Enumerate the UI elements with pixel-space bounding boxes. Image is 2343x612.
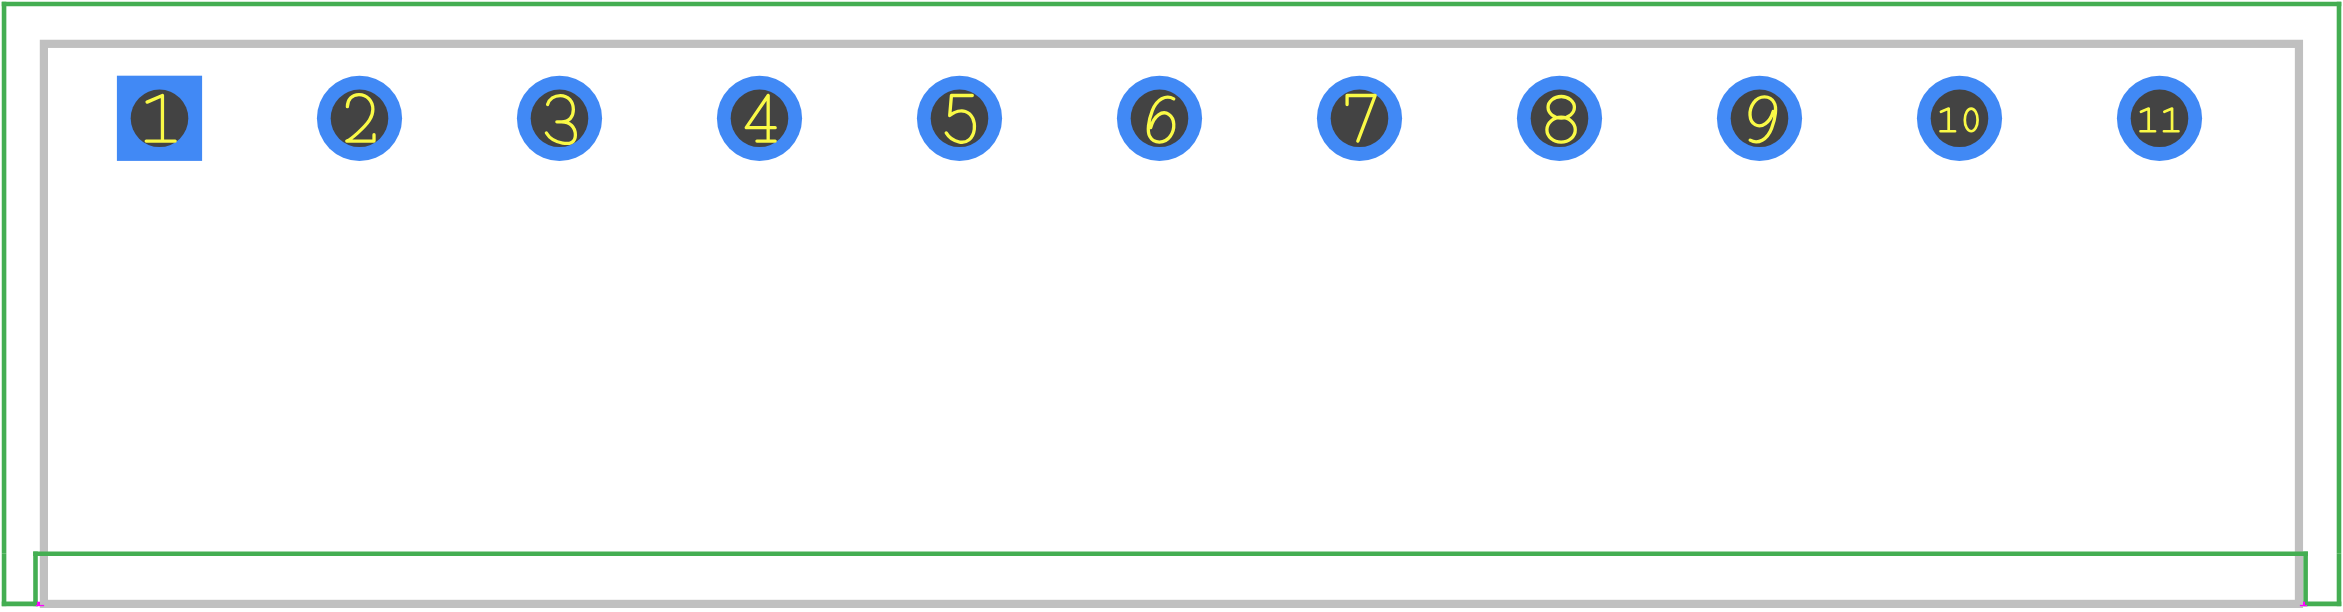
button[interactable]: Pad 7 (1316, 75, 1401, 160)
button[interactable]: Pad 6 (1116, 75, 1201, 160)
button[interactable]: Pad 3 (516, 75, 601, 160)
button[interactable]: Pad 11 (2116, 75, 2201, 160)
button[interactable]: Pad 2 (316, 75, 401, 160)
button[interactable]: Pad 8 (1516, 75, 1601, 160)
button[interactable]: Pad 9 (1716, 75, 1801, 160)
button[interactable]: Pad 5 (916, 75, 1001, 160)
other: PCB footprint drawing: 11 pin through-ho… (0, 0, 2343, 612)
button[interactable]: Pad 10 (1916, 75, 2001, 160)
button[interactable]: Pad 4 (716, 75, 801, 160)
button[interactable]: Pad 1 (116, 75, 201, 160)
